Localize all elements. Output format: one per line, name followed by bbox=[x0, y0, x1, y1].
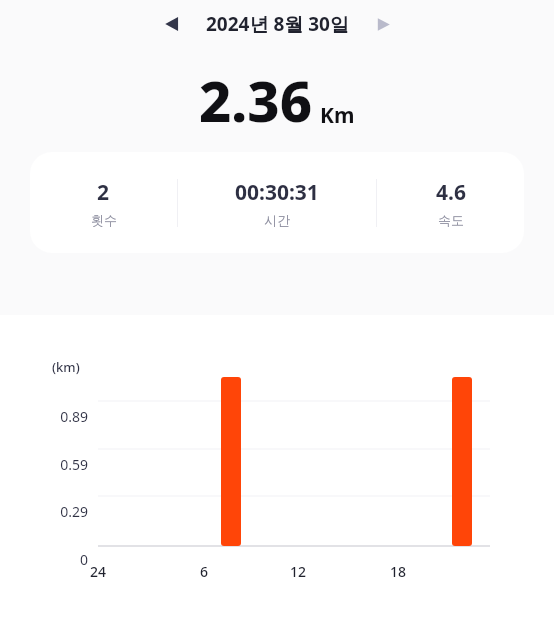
staticText: 시간 bbox=[264, 212, 290, 228]
staticText: 횟수 bbox=[91, 212, 117, 228]
staticText: 속도 bbox=[438, 212, 464, 228]
staticText: Km bbox=[320, 101, 355, 130]
staticText: 0.29 bbox=[40, 502, 88, 521]
staticText: 2 bbox=[97, 178, 110, 207]
button[interactable]: 2 bbox=[30, 178, 177, 228]
staticText: 4.6 bbox=[436, 178, 466, 207]
button[interactable]: Previous day bbox=[150, 2, 194, 46]
button[interactable]: Next day bbox=[361, 2, 405, 46]
staticText: 12 bbox=[280, 562, 316, 581]
button[interactable]: 00:30:31 bbox=[178, 178, 376, 228]
button[interactable]: 4.6 bbox=[377, 178, 524, 228]
button[interactable]: 2 bbox=[30, 152, 524, 253]
staticText: 0 bbox=[40, 550, 88, 569]
staticText: 18 bbox=[380, 562, 416, 581]
staticText: 0.59 bbox=[40, 455, 88, 474]
staticText: 2.36 bbox=[199, 62, 313, 138]
staticText: 00:30:31 bbox=[235, 178, 319, 207]
staticText: 24 bbox=[80, 562, 116, 581]
staticText: 2024년 8월 30일 bbox=[206, 11, 349, 37]
staticText: (km) bbox=[52, 358, 80, 376]
staticText: 6 bbox=[186, 562, 222, 581]
staticText: 0.89 bbox=[40, 407, 88, 426]
